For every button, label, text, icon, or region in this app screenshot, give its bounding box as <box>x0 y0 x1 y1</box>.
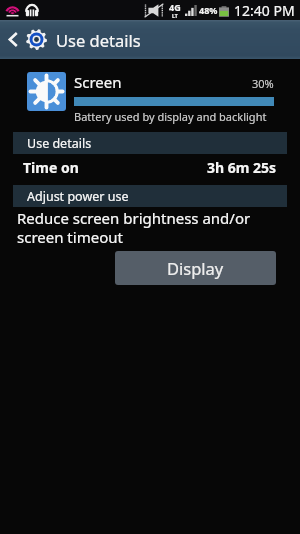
staticText: Battery used by display and backlight <box>74 109 267 124</box>
staticText: 3h 6m 25s <box>207 158 277 177</box>
staticText: Use details <box>27 135 92 152</box>
button[interactable]: Display <box>115 251 276 285</box>
staticText: Display <box>167 257 224 279</box>
staticText: Use details <box>56 29 141 51</box>
staticText: 4G <box>169 1 181 13</box>
staticText: Reduce screen brightness and/or screen t… <box>17 208 251 247</box>
staticText: Screen <box>74 72 122 92</box>
button[interactable]: Back <box>0 20 50 59</box>
staticText: 30% <box>252 76 274 91</box>
staticText: LT <box>172 13 178 20</box>
staticText: Adjust power use <box>27 188 129 205</box>
staticText: 12:40 PM <box>234 1 295 20</box>
staticText: 48% <box>199 4 218 16</box>
staticText: Time on <box>23 158 79 177</box>
